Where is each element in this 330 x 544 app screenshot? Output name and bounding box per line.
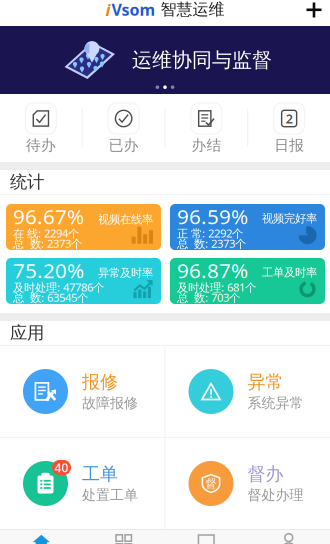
staticText: 异常及时率 xyxy=(98,269,153,277)
staticText: 总 数: 63545个 xyxy=(13,293,88,302)
staticText: 待办 xyxy=(26,139,56,152)
staticText: 及时处理: 47786个 xyxy=(13,283,104,291)
staticText: 视频完好率 xyxy=(262,214,317,223)
staticText: 智慧运维 xyxy=(160,3,224,16)
staticText: 已办 xyxy=(109,139,139,152)
staticText: 故障报修 xyxy=(82,396,138,410)
button[interactable]: 督 xyxy=(165,438,330,529)
button[interactable]: 96.87% xyxy=(170,258,325,304)
staticText: 96.67% xyxy=(13,208,84,224)
staticText: 视频在线率 xyxy=(98,215,153,224)
button[interactable]: 报修 xyxy=(0,346,164,437)
staticText: 总 数: 2373个 xyxy=(13,239,82,248)
staticText: 督办 xyxy=(247,465,283,483)
staticText: 督 xyxy=(205,478,216,489)
button[interactable]: 已办 xyxy=(83,103,165,152)
button[interactable]: 75.20% xyxy=(6,258,161,304)
button[interactable]: 消息 xyxy=(165,530,247,544)
button[interactable]: 96.67% xyxy=(6,204,161,250)
button[interactable]: 待办 xyxy=(0,103,82,152)
button[interactable]: Add xyxy=(300,0,328,29)
staticText: 及时处理: 681个 xyxy=(177,283,256,291)
staticText: 工单 xyxy=(82,465,118,483)
button[interactable]: 运维协同与监督 xyxy=(0,26,330,94)
button[interactable]: 首页 xyxy=(0,530,82,544)
button[interactable]: 应用 xyxy=(82,530,165,544)
staticText: 督处办理 xyxy=(247,488,303,502)
staticText: 总 数: 2373个 xyxy=(177,239,246,248)
staticText: 在 线: 2294个 xyxy=(13,229,79,237)
staticText: 40 xyxy=(54,461,68,474)
button[interactable]: 40 xyxy=(0,438,164,529)
button[interactable]: 异常 xyxy=(165,346,330,437)
staticText: 96.59% xyxy=(177,208,248,224)
button[interactable]: 96.59% xyxy=(170,204,325,250)
staticText: Vsom xyxy=(111,2,155,17)
staticText: 报修 xyxy=(82,373,118,391)
staticText: i xyxy=(105,2,110,17)
staticText: 正 常: 2292个 xyxy=(177,229,243,237)
staticText: 异常 xyxy=(247,373,283,391)
staticText: 统计 xyxy=(10,173,44,191)
button[interactable]: 办结 xyxy=(165,103,247,152)
button[interactable]: 我的 xyxy=(247,530,330,544)
staticText: 办结 xyxy=(191,139,221,152)
staticText: 75.20% xyxy=(13,262,84,278)
staticText: 日报 xyxy=(274,139,304,152)
staticText: 2 xyxy=(286,112,293,125)
staticText: 应用 xyxy=(10,324,44,342)
staticText: 96.87% xyxy=(177,262,248,278)
staticText: 运维协同与监督 xyxy=(132,50,272,70)
staticText: 系统异常 xyxy=(247,396,303,410)
staticText: 工单及时率 xyxy=(262,268,317,277)
button[interactable]: 2 xyxy=(248,103,330,152)
staticText: 处置工单 xyxy=(82,488,138,502)
staticText: 总 数: 703个 xyxy=(177,293,240,302)
